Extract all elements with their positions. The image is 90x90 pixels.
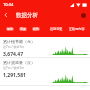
button[interactable]: 转化 xyxy=(32,27,40,31)
button[interactable]: 近期变更 xyxy=(50,27,63,31)
staticText: 互联网内容 xyxy=(69,27,85,31)
staticText: 累计浏览量（次） xyxy=(3,60,35,65)
button[interactable]: 概览 xyxy=(6,27,14,31)
button[interactable]: Profile xyxy=(79,11,88,20)
staticText: 概览 xyxy=(7,27,13,31)
button[interactable]: 流量 xyxy=(19,27,27,31)
staticText: 近7日 / 较前7日 xyxy=(3,45,25,49)
button[interactable]: 互联网内容 xyxy=(69,27,85,31)
staticText: 1,291,581 xyxy=(3,72,26,79)
staticText: 数据分析 xyxy=(16,12,38,19)
staticText: 近期变更 xyxy=(50,27,63,31)
button[interactable]: 累计浏览量（次） xyxy=(0,58,90,85)
staticText: 近7日 / 较前7日 xyxy=(3,66,25,70)
staticText: 累计销售额（元） xyxy=(3,39,35,44)
staticText: 转化 xyxy=(33,27,39,31)
button[interactable]: 累计销售额（元） xyxy=(0,37,90,57)
staticText: 3,674.47 xyxy=(3,51,23,57)
button[interactable]: Back xyxy=(2,11,10,19)
staticText: 流量 xyxy=(20,27,26,31)
staticText: 10:04 xyxy=(3,2,14,7)
